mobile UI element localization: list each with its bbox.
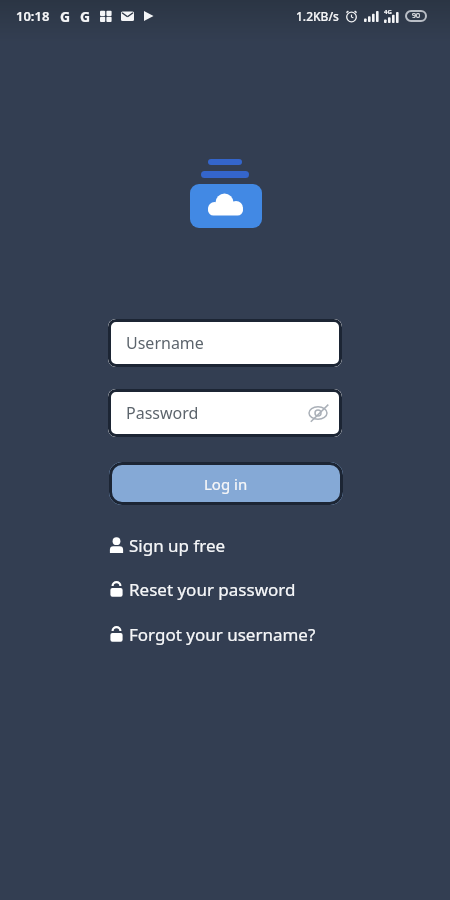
staticText: G (60, 7, 71, 26)
staticText: Username (126, 332, 204, 354)
staticText: Sign up free (129, 534, 226, 557)
button[interactable]: Password (108, 389, 342, 437)
button[interactable]: Log in (109, 462, 343, 505)
staticText: Reset your password (129, 578, 296, 601)
staticText: 10:18 (16, 7, 50, 25)
staticText: 90 (412, 11, 421, 21)
button[interactable]: Username (108, 319, 342, 367)
button[interactable]: Sign up free (109, 532, 226, 558)
staticText: Log in (204, 474, 248, 494)
button[interactable]: Reset your password (109, 576, 296, 602)
staticText: Forgot your username? (129, 623, 316, 646)
staticText: G (80, 7, 91, 26)
staticText: 4G (384, 8, 392, 16)
button[interactable]: Forgot your username? (109, 621, 316, 647)
staticText: 1.2KB/s (296, 8, 339, 24)
staticText: Password (126, 402, 199, 424)
